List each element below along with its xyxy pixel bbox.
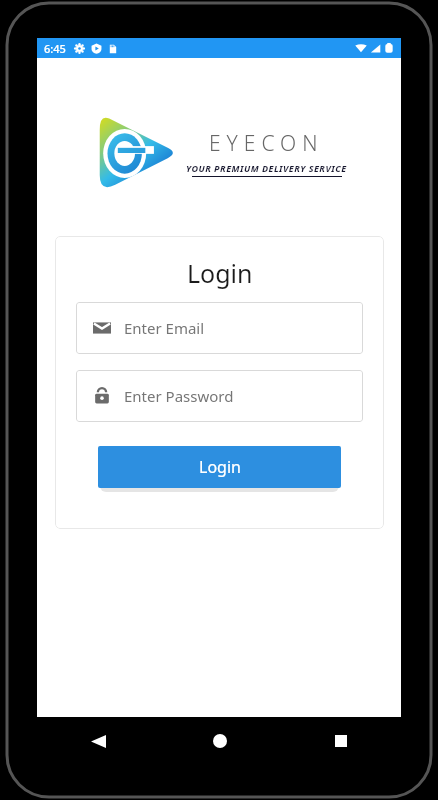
button[interactable]: Recents [280, 717, 401, 765]
staticText: YOUR PREMIUM DELIVERY SERVICE [186, 162, 347, 174]
button[interactable]: Enter Email [76, 302, 363, 354]
staticText: Login [187, 256, 253, 290]
button[interactable]: Back [37, 717, 159, 765]
button[interactable]: Login [98, 446, 341, 488]
button[interactable]: Enter Password [76, 370, 363, 422]
staticText: EYECON [209, 129, 324, 158]
staticText: Login [199, 456, 241, 478]
staticText: 6:45 [44, 41, 66, 56]
staticText: Enter Password [124, 386, 234, 406]
button[interactable]: Home [159, 717, 280, 765]
staticText: Enter Email [124, 318, 205, 338]
